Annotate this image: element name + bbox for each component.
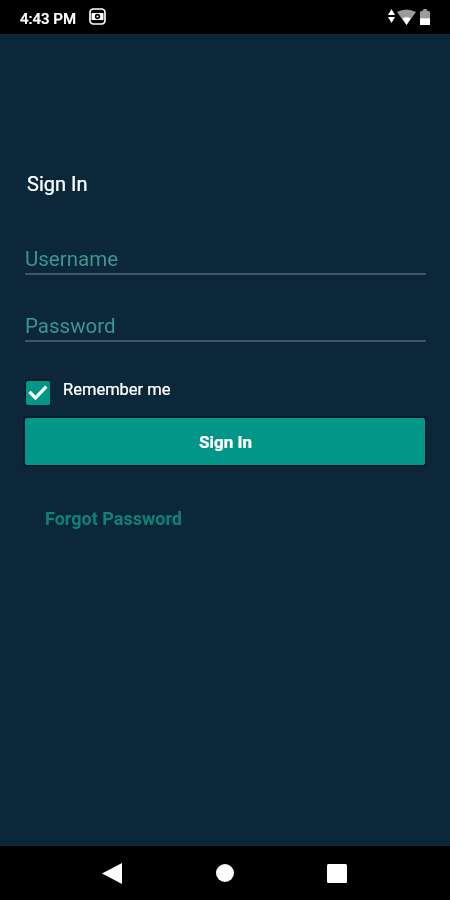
staticText: Forgot Password [45,508,182,529]
staticText: Remember me [63,380,171,399]
button[interactable]: Forgot Password [45,508,182,529]
button[interactable]: Recent apps [312,853,362,893]
button[interactable]: Username [25,241,426,281]
staticText: Sign In [199,432,252,452]
staticText: Password [25,314,116,338]
staticText: Username [25,247,119,271]
button[interactable]: Back [87,853,137,893]
staticText: 4:43 PM [20,10,77,28]
button[interactable]: Home [200,853,250,893]
staticText: Sign In [27,172,88,195]
button[interactable]: Password [25,308,426,348]
button[interactable]: Sign In [25,418,425,465]
button[interactable]: Remember me [26,381,171,406]
